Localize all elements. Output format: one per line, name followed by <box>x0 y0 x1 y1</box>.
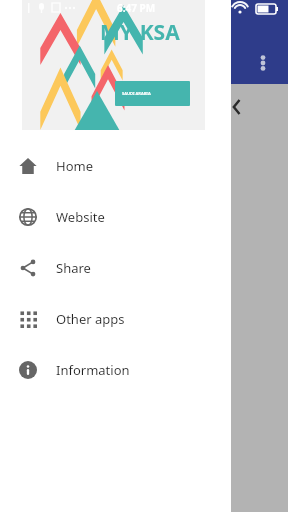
staticText: SAUDI ARABIA <box>122 91 151 96</box>
button[interactable]: Share <box>0 242 231 293</box>
staticText: Share <box>56 259 91 277</box>
staticText: Home <box>56 157 93 175</box>
button[interactable]: More options <box>246 46 280 80</box>
staticText: Other apps <box>56 310 125 328</box>
staticText: 6:47 PM <box>117 1 156 15</box>
button[interactable]: SAUDI ARABIA <box>115 81 190 106</box>
button[interactable]: Other apps <box>0 293 231 344</box>
staticText: Website <box>56 208 105 226</box>
staticText: Information <box>56 361 130 379</box>
staticText: MY-KSA <box>100 18 180 47</box>
button[interactable]: Information <box>0 344 231 395</box>
button[interactable]: Website <box>0 191 231 242</box>
button[interactable]: Home <box>0 140 231 191</box>
